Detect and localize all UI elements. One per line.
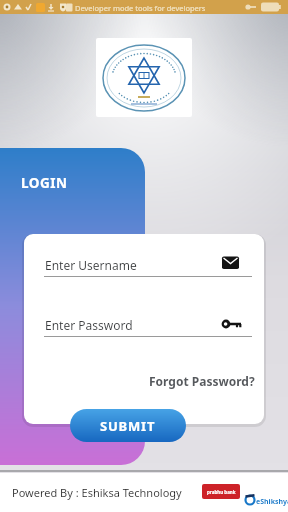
staticText: prabhu bank: [207, 489, 236, 495]
button[interactable]: [222, 256, 240, 270]
button[interactable]: Enter Password: [45, 317, 133, 333]
button[interactable]: eShikshya: [256, 497, 288, 507]
staticText: Powered By : Eshiksa Technology: [12, 485, 182, 500]
button[interactable]: [221, 317, 242, 331]
button[interactable]: Forgot Password?: [149, 373, 255, 389]
staticText: SUBMIT: [100, 417, 156, 435]
staticText: LOGIN: [21, 174, 68, 192]
button[interactable]: Enter Username: [45, 257, 137, 273]
button[interactable]: SUBMIT: [70, 409, 186, 442]
button[interactable]: prabhu bank: [202, 484, 240, 499]
staticText: Developer mode tools for developers: [75, 3, 206, 13]
